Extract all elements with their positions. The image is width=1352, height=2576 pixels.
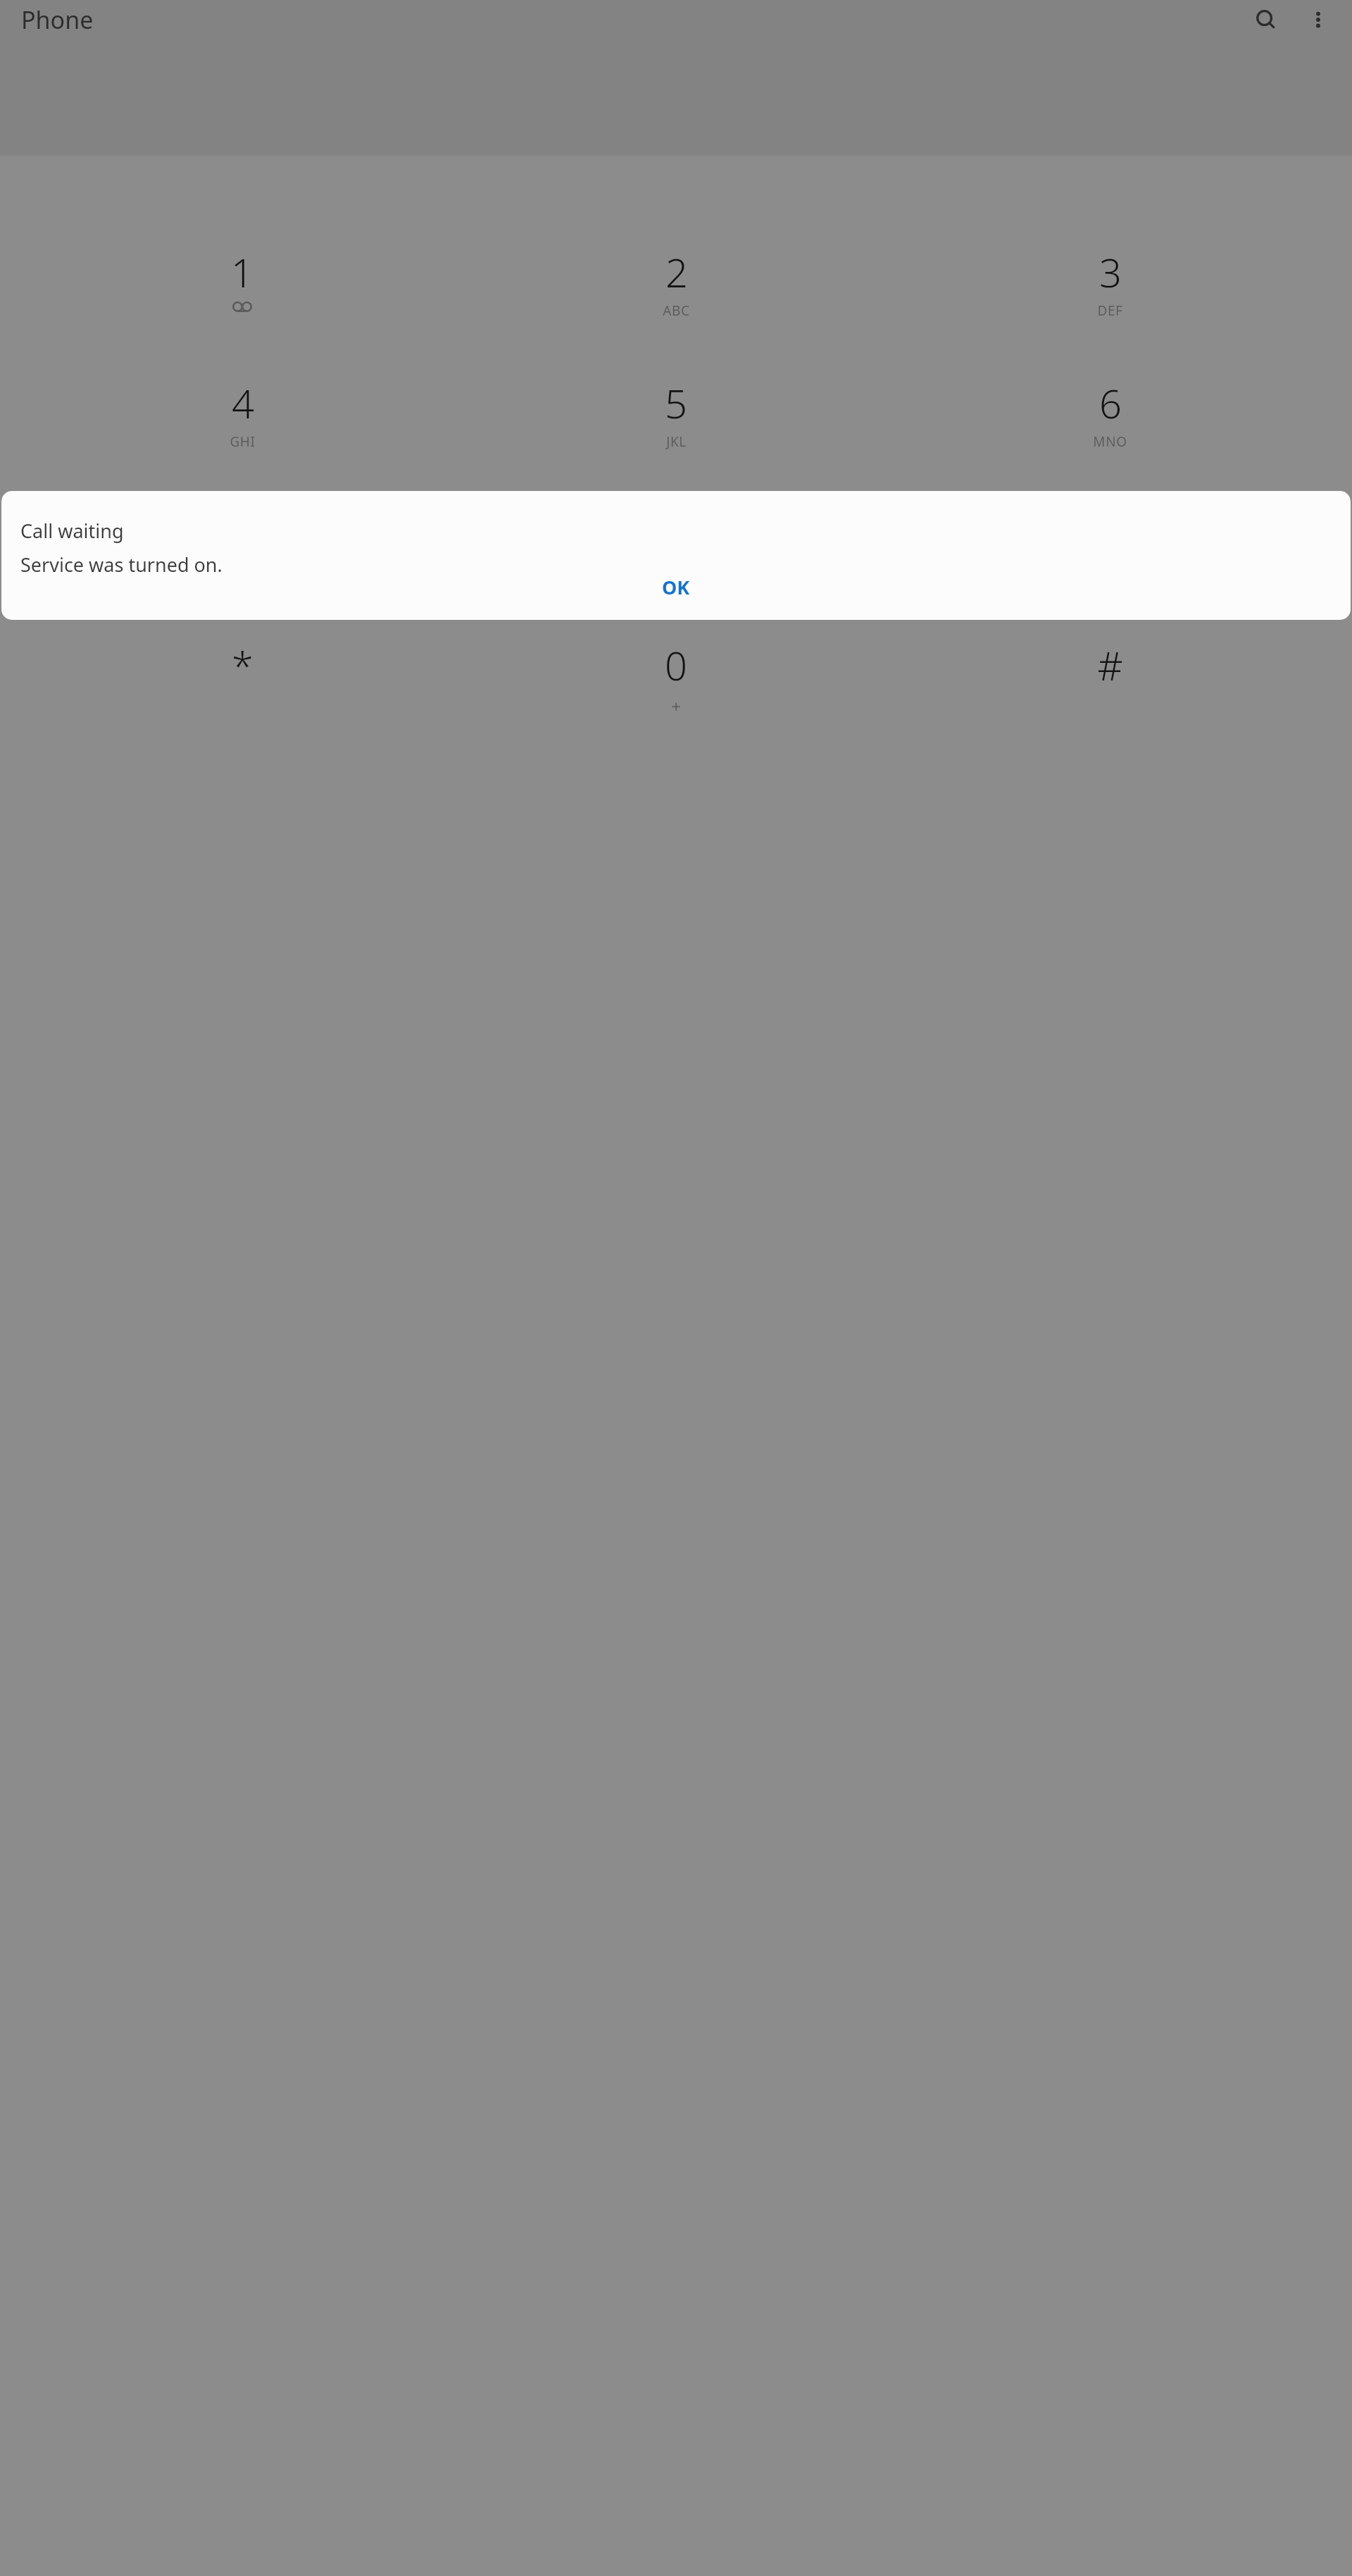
button[interactable]: Search — [1246, 0, 1286, 39]
staticText: DEF — [1097, 301, 1123, 320]
button[interactable]: 1 — [25, 245, 459, 376]
button[interactable]: 8 — [459, 507, 893, 638]
button[interactable]: 3 — [893, 245, 1327, 376]
staticText: 2 — [665, 245, 688, 299]
staticText: MNO — [1093, 433, 1127, 451]
staticText: + — [671, 695, 681, 718]
staticText: 1 — [231, 245, 254, 299]
button[interactable]: 5 — [459, 376, 893, 507]
staticText: 0 — [665, 638, 687, 692]
staticText: OK — [662, 574, 690, 600]
button[interactable]: OK — [638, 567, 714, 607]
staticText: 3 — [1099, 245, 1122, 299]
button[interactable]: More options — [1298, 0, 1338, 39]
staticText: # — [1097, 638, 1123, 692]
button[interactable]: 9 — [893, 507, 1327, 638]
button[interactable]: 6 — [893, 376, 1327, 507]
staticText: Phone — [21, 4, 94, 36]
staticText: 5 — [665, 376, 687, 430]
button[interactable]: 2 — [459, 245, 893, 376]
button[interactable]: * — [25, 638, 459, 769]
staticText: GHI — [230, 433, 256, 451]
button[interactable]: 0 — [459, 638, 893, 769]
button[interactable]: 4 — [25, 376, 459, 507]
staticText: 4 — [232, 376, 254, 430]
button[interactable]: # — [893, 638, 1327, 769]
staticText: JKL — [666, 433, 687, 451]
staticText: 6 — [1099, 376, 1122, 430]
staticText: * — [232, 638, 254, 692]
staticText: Call waiting — [20, 518, 124, 544]
button[interactable]: 7 — [25, 507, 459, 638]
staticText: Service was turned on. — [20, 552, 223, 578]
staticText: ABC — [663, 301, 690, 320]
staticText: TUV — [663, 564, 689, 582]
